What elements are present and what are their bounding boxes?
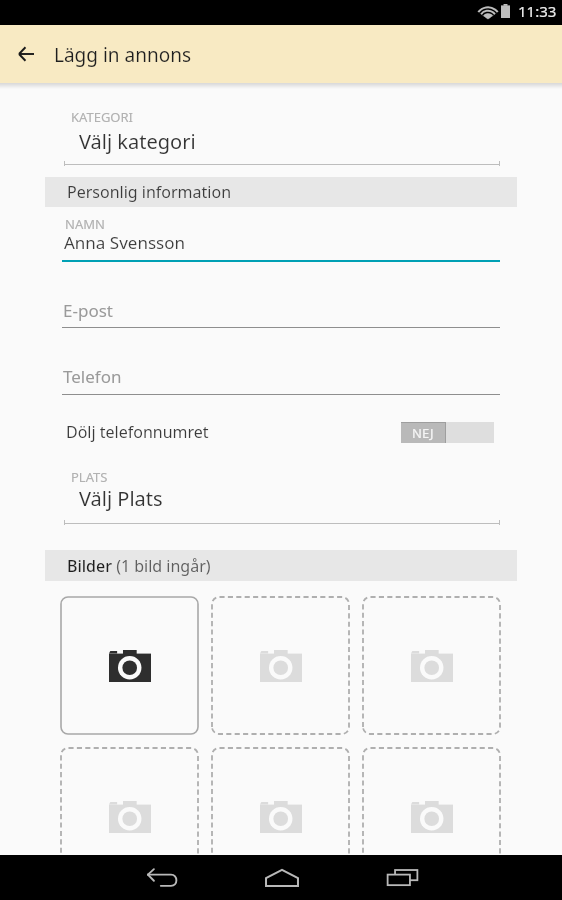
staticText: E-post xyxy=(63,299,113,322)
staticText: Lägg in annons xyxy=(54,42,191,68)
staticText: NAMN xyxy=(65,215,105,233)
button[interactable]: Photo 1 xyxy=(60,596,199,735)
staticText: PLATS xyxy=(71,468,108,486)
button[interactable]: Back xyxy=(5,25,47,83)
button[interactable]: NEJ xyxy=(401,422,494,443)
staticText: Anna Svensson xyxy=(64,231,185,254)
button[interactable]: Add photo xyxy=(60,747,199,886)
button[interactable]: Add photo xyxy=(362,596,501,735)
button[interactable]: Home xyxy=(254,855,310,900)
staticText: Välj Plats xyxy=(79,485,163,512)
staticText: KATEGORI xyxy=(71,108,134,126)
staticText: 11:33 xyxy=(518,1,557,21)
button[interactable]: Dölj telefonnumret xyxy=(62,414,500,452)
button[interactable]: Add photo xyxy=(362,747,501,886)
staticText: Telefon xyxy=(63,365,122,388)
button[interactable]: Recent apps xyxy=(374,855,430,900)
staticText: Bilder (1 bild ingår) xyxy=(67,555,211,577)
staticText: Dölj telefonnumret xyxy=(66,421,209,443)
button[interactable]: Add photo xyxy=(211,596,350,735)
staticText: NEJ xyxy=(412,424,434,442)
staticText: Välj kategori xyxy=(79,128,196,155)
button[interactable]: Back xyxy=(134,855,190,900)
staticText: Personlig information xyxy=(67,181,232,203)
button[interactable]: Add photo xyxy=(211,747,350,886)
